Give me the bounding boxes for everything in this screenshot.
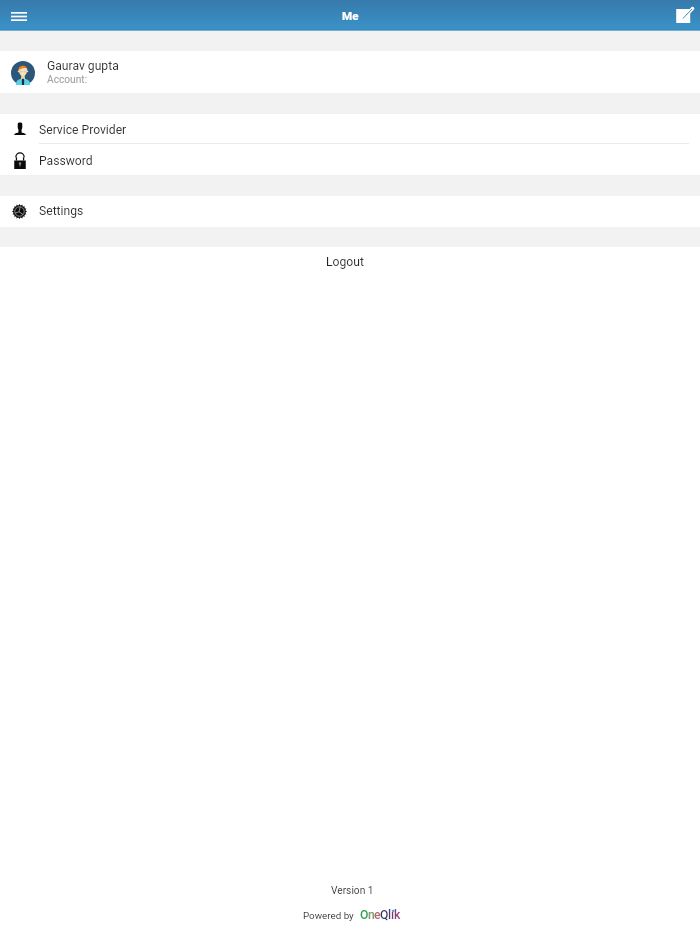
button[interactable]: Open navigation menu	[6, 3, 32, 29]
staticText: l	[388, 908, 392, 922]
staticText: Password	[39, 154, 93, 168]
staticText: Settings	[39, 204, 84, 218]
staticText: Gaurav gupta	[47, 59, 119, 73]
staticText: Logout	[326, 255, 364, 269]
staticText: k	[394, 908, 401, 922]
staticText: Service Provider	[39, 123, 127, 137]
button[interactable]: Service Provider	[0, 114, 700, 144]
staticText: Q	[380, 908, 389, 922]
button[interactable]: Settings	[0, 196, 700, 227]
staticText: i	[391, 908, 395, 922]
button[interactable]: Password	[0, 144, 700, 175]
staticText: Me	[342, 9, 359, 23]
button[interactable]: Edit profile	[673, 3, 699, 29]
staticText: Account:	[47, 74, 88, 86]
staticText: Powered by	[303, 910, 354, 921]
button[interactable]: Gaurav gupta	[0, 51, 700, 93]
staticText: n	[368, 908, 375, 922]
staticText: Version 1	[331, 885, 374, 897]
staticText: e	[374, 908, 381, 922]
button[interactable]: Logout	[0, 247, 700, 275]
staticText: O	[360, 908, 369, 922]
